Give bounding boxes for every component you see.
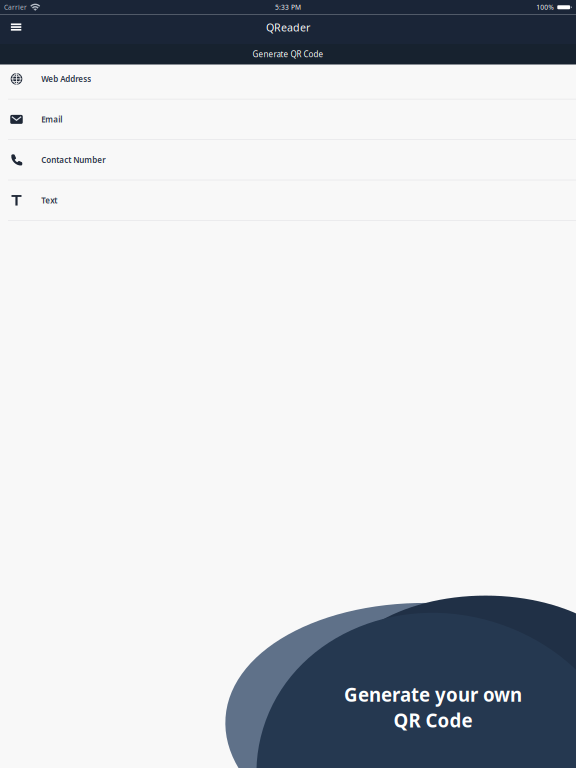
staticText: Generate your own [344, 682, 522, 707]
button[interactable]: Text [0, 180, 576, 221]
button[interactable]: Email [0, 99, 576, 140]
button[interactable]: Contact Number [0, 140, 576, 180]
staticText: Generate QR Code [252, 49, 323, 59]
staticText: Contact Number [41, 154, 105, 165]
staticText: Email [41, 114, 62, 125]
staticText: 100% [536, 3, 554, 12]
button[interactable]: Menu [0, 14, 32, 44]
button[interactable]: Generate QR Code [0, 44, 576, 64]
button[interactable]: Web Address [0, 59, 576, 99]
staticText: Carrier [4, 3, 27, 12]
staticText: QR Code [393, 708, 472, 733]
staticText: 5:33 PM [275, 3, 301, 12]
staticText: Text [41, 195, 57, 206]
staticText: Web Address [41, 74, 91, 84]
staticText: QReader [266, 20, 310, 35]
